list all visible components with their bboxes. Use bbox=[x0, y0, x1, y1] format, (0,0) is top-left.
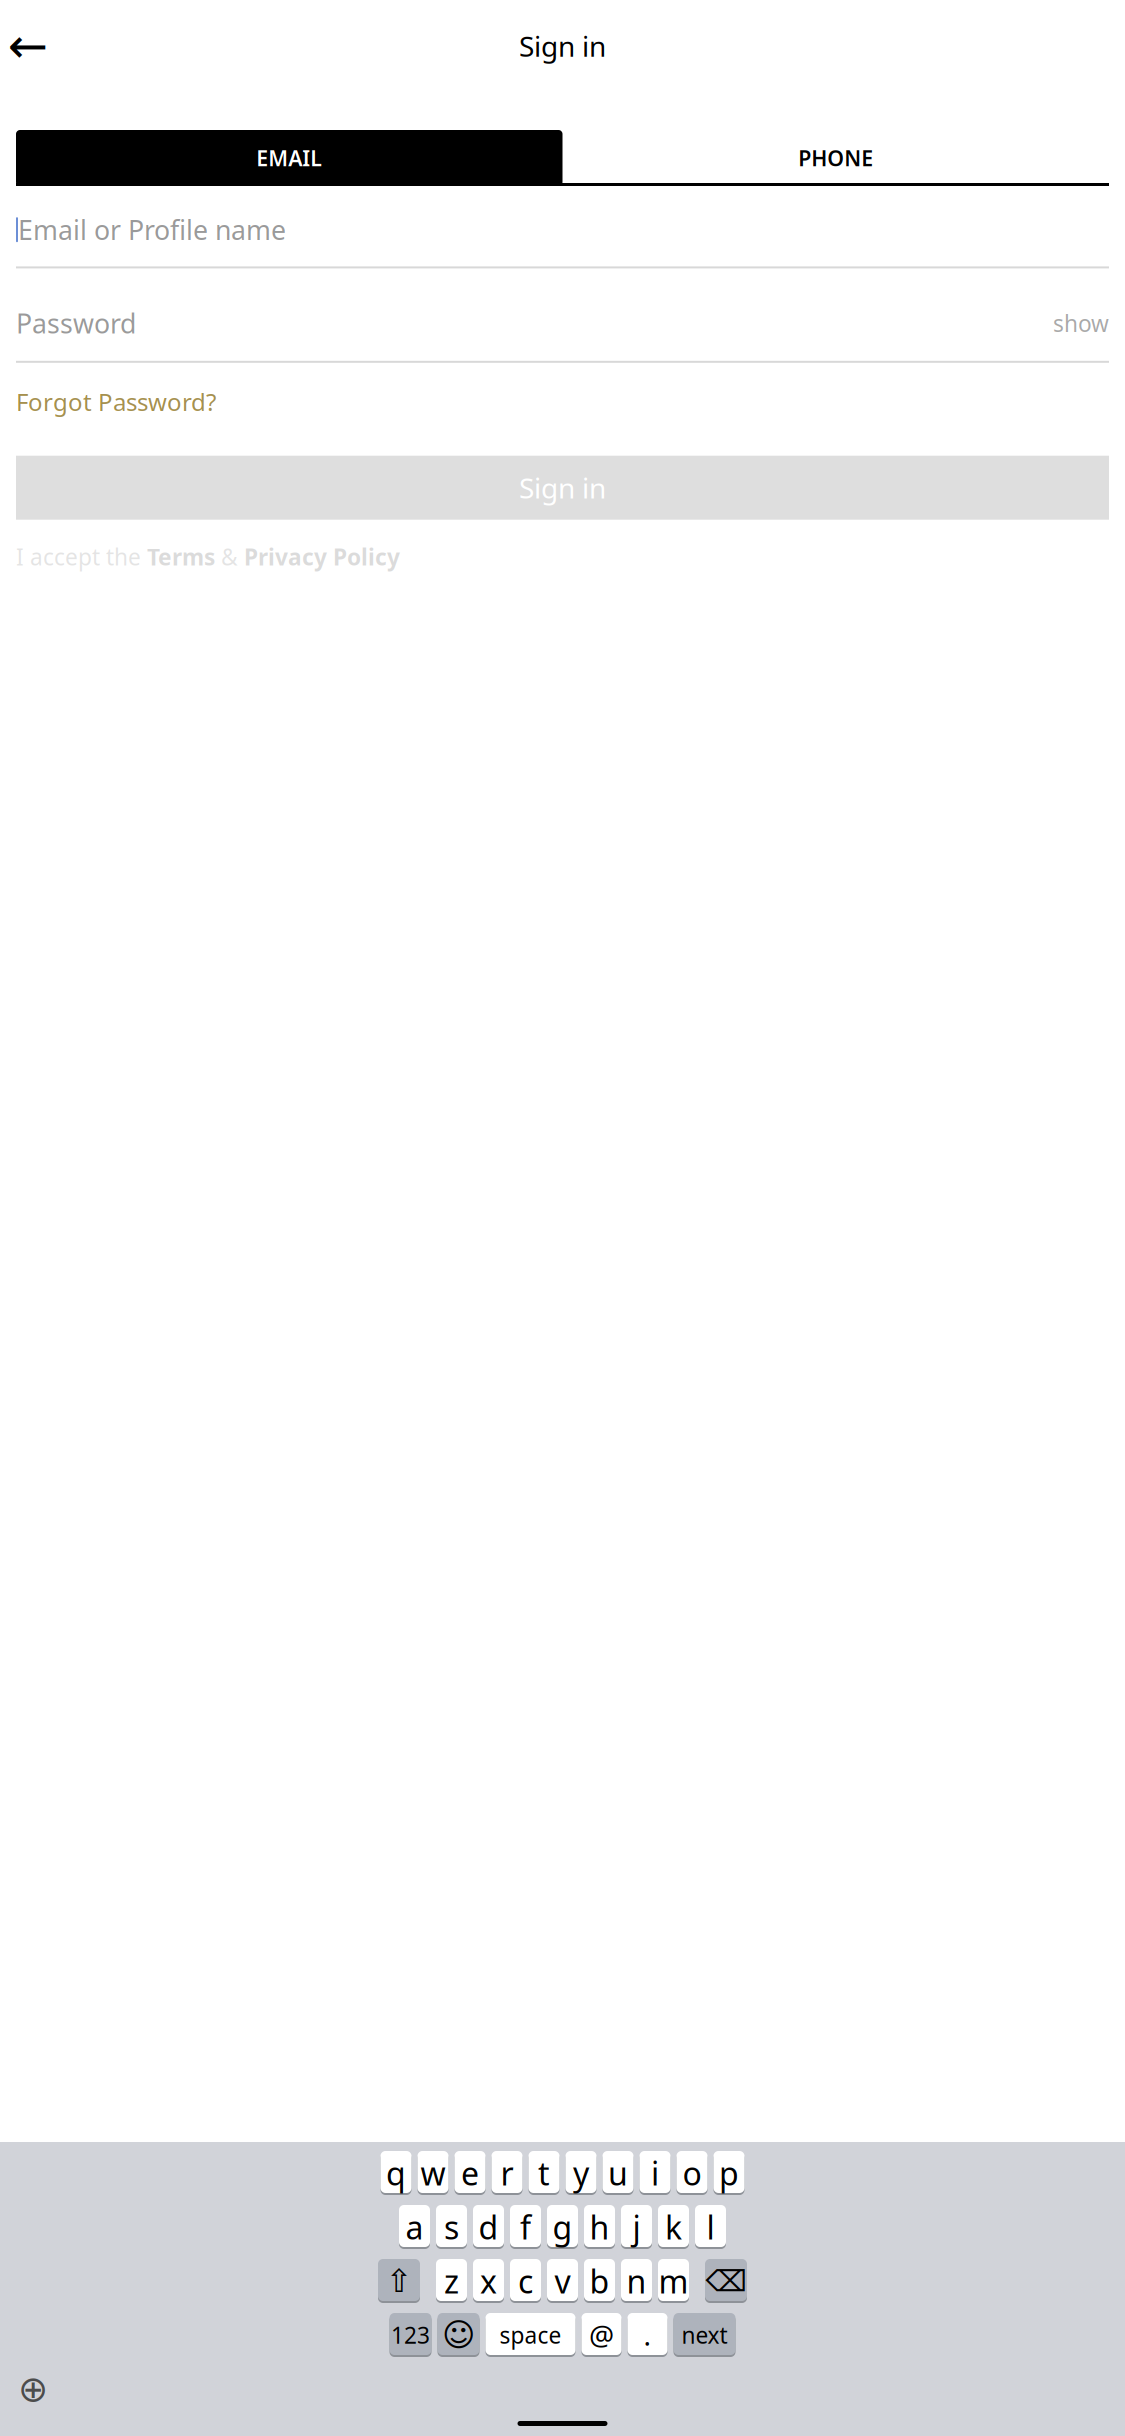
button[interactable]: t bbox=[528, 2151, 559, 2195]
staticText: c bbox=[518, 2260, 533, 2302]
staticText: q bbox=[386, 2152, 406, 2194]
button[interactable]: next bbox=[673, 2313, 735, 2357]
staticText: ⇧ bbox=[385, 2263, 412, 2299]
button[interactable]: Delete bbox=[705, 2259, 747, 2303]
button[interactable]: m bbox=[658, 2259, 689, 2303]
staticText: d bbox=[478, 2206, 498, 2248]
staticText: t bbox=[538, 2152, 550, 2194]
button[interactable]: z bbox=[436, 2259, 467, 2303]
button[interactable]: i bbox=[639, 2151, 670, 2195]
button[interactable]: k bbox=[658, 2205, 689, 2249]
button[interactable]: l bbox=[695, 2205, 726, 2249]
button[interactable]: @ bbox=[581, 2313, 621, 2357]
staticText: space bbox=[499, 2320, 561, 2350]
button[interactable]: Next keyboard bbox=[10, 2369, 56, 2409]
staticText: show bbox=[1053, 308, 1109, 338]
staticText: 123 bbox=[391, 2320, 430, 2350]
staticText: o bbox=[682, 2152, 701, 2194]
staticText: n bbox=[626, 2260, 646, 2302]
staticText: Sign in bbox=[519, 27, 606, 65]
button[interactable]: . bbox=[627, 2313, 667, 2357]
button[interactable]: b bbox=[584, 2259, 615, 2303]
button[interactable]: a bbox=[399, 2205, 430, 2249]
staticText: w bbox=[420, 2152, 445, 2194]
button[interactable]: e bbox=[454, 2151, 485, 2195]
button[interactable]: Back bbox=[4, 24, 52, 68]
button[interactable]: n bbox=[621, 2259, 652, 2303]
staticText: l bbox=[706, 2206, 714, 2248]
staticText: & bbox=[215, 542, 244, 572]
button[interactable]: PHONE bbox=[562, 130, 1109, 186]
button[interactable]: EMAIL bbox=[16, 130, 562, 186]
staticText: . bbox=[643, 2316, 651, 2354]
staticText: u bbox=[608, 2152, 628, 2194]
button[interactable]: show bbox=[1053, 308, 1109, 338]
button[interactable]: f bbox=[510, 2205, 541, 2249]
button[interactable]: w bbox=[417, 2151, 448, 2195]
button[interactable]: 123 bbox=[389, 2313, 431, 2357]
button[interactable]: space bbox=[485, 2313, 575, 2357]
staticText: Sign in bbox=[519, 469, 606, 506]
button[interactable]: j bbox=[621, 2205, 652, 2249]
staticText: v bbox=[554, 2260, 570, 2302]
staticText: g bbox=[552, 2206, 572, 2248]
staticText: Email or Profile name bbox=[18, 212, 286, 247]
staticText: p bbox=[719, 2152, 739, 2194]
button[interactable]: v bbox=[547, 2259, 578, 2303]
staticText: ⌫ bbox=[705, 2264, 746, 2298]
staticText: Password bbox=[16, 305, 136, 341]
staticText: next bbox=[681, 2320, 727, 2350]
button[interactable]: u bbox=[602, 2151, 633, 2195]
button[interactable]: Forgot Password? bbox=[16, 386, 216, 418]
button[interactable]: y bbox=[565, 2151, 596, 2195]
button[interactable]: o bbox=[676, 2151, 707, 2195]
staticText: PHONE bbox=[798, 144, 873, 172]
staticText: b bbox=[589, 2260, 609, 2302]
button[interactable]: s bbox=[436, 2205, 467, 2249]
button[interactable]: g bbox=[547, 2205, 578, 2249]
staticText: f bbox=[520, 2206, 531, 2248]
staticText: h bbox=[589, 2206, 609, 2248]
staticText: Forgot Password? bbox=[16, 386, 216, 418]
staticText: i bbox=[651, 2152, 659, 2194]
staticText: j bbox=[632, 2206, 640, 2248]
staticText: r bbox=[500, 2152, 513, 2194]
staticText: m bbox=[658, 2260, 688, 2302]
staticText: ☺ bbox=[442, 2317, 475, 2353]
staticText: EMAIL bbox=[256, 144, 322, 172]
button[interactable]: Privacy Policy bbox=[244, 542, 400, 572]
staticText: s bbox=[444, 2206, 459, 2248]
button[interactable]: h bbox=[584, 2205, 615, 2249]
staticText: @ bbox=[589, 2316, 614, 2354]
staticText: x bbox=[480, 2260, 497, 2302]
staticText: Terms bbox=[147, 542, 215, 572]
staticText: Privacy Policy bbox=[244, 542, 400, 572]
button[interactable]: q bbox=[380, 2151, 411, 2195]
button[interactable]: p bbox=[713, 2151, 744, 2195]
staticText: y bbox=[573, 2152, 589, 2194]
button[interactable]: Emoji bbox=[437, 2313, 479, 2357]
staticText: k bbox=[665, 2206, 682, 2248]
staticText: ← bbox=[8, 19, 48, 73]
button[interactable]: Shift bbox=[378, 2259, 420, 2303]
staticText: e bbox=[461, 2152, 479, 2194]
button[interactable]: Terms bbox=[147, 542, 215, 572]
staticText: a bbox=[405, 2206, 423, 2248]
button[interactable]: c bbox=[510, 2259, 541, 2303]
button[interactable]: d bbox=[473, 2205, 504, 2249]
staticText: I accept the bbox=[16, 542, 147, 572]
button[interactable]: x bbox=[473, 2259, 504, 2303]
button[interactable]: r bbox=[491, 2151, 522, 2195]
staticText: z bbox=[444, 2260, 459, 2302]
staticText: ⊕ bbox=[18, 2369, 48, 2409]
